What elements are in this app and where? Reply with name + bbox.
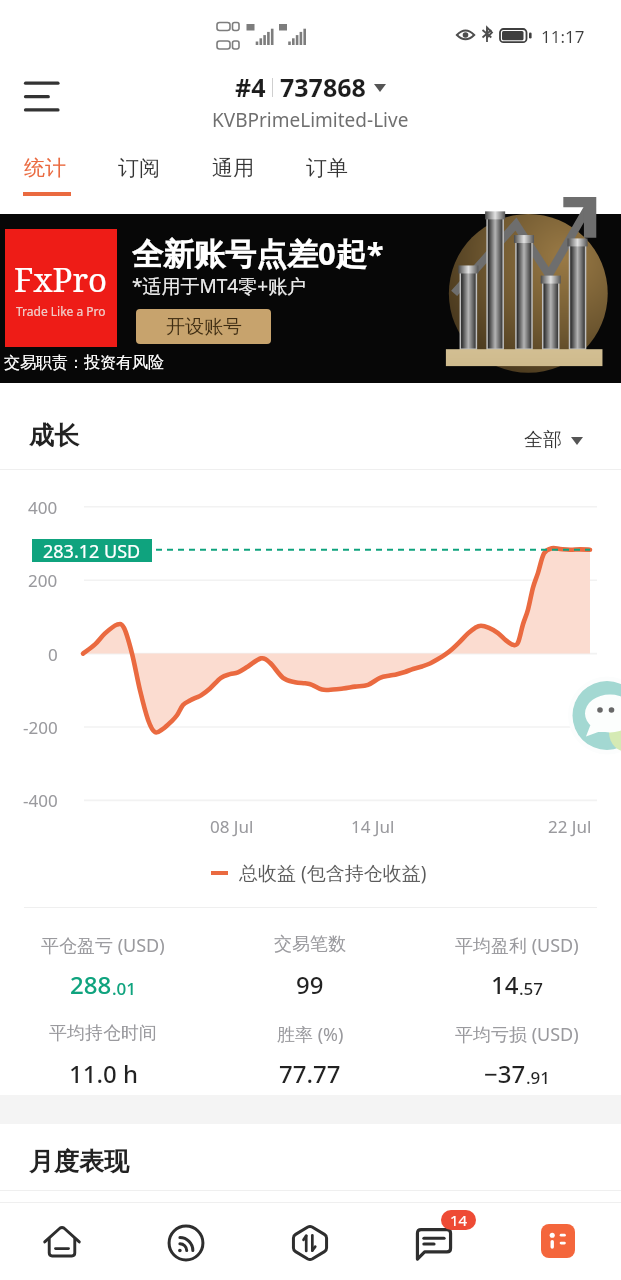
staticText: 平均盈利 (USD) xyxy=(455,933,579,958)
staticText: 全部 xyxy=(524,428,562,452)
staticText: 400 xyxy=(28,496,58,519)
staticText: FxPro xyxy=(14,257,108,302)
staticText: 交易职责：投资有风险 xyxy=(4,353,164,373)
staticText: −37 xyxy=(484,1057,526,1090)
staticText: 22 Jul xyxy=(548,815,592,838)
staticText: 288 xyxy=(70,968,112,1001)
staticText: -200 xyxy=(23,716,58,739)
button[interactable]: Trade xyxy=(270,1202,350,1280)
staticText: 总收益 (包含持仓收益) xyxy=(239,860,427,886)
staticText: 订阅 xyxy=(118,155,160,181)
button[interactable]: 通用 xyxy=(202,140,264,196)
staticText: 14 Jul xyxy=(351,815,395,838)
staticText: 0 xyxy=(48,643,58,666)
staticText: 平均亏损 (USD) xyxy=(455,1022,579,1047)
button[interactable]: 统计 xyxy=(14,140,76,196)
button[interactable]: 订单 xyxy=(296,140,358,196)
staticText: Trade Like a Pro xyxy=(16,303,106,319)
staticText: 平仓盈亏 (USD) xyxy=(41,933,165,958)
button[interactable]: 全部 xyxy=(524,428,583,452)
staticText: 283.12 USD xyxy=(43,539,141,562)
staticText: 全新账号点差0起* xyxy=(132,232,384,274)
staticText: 11:17 xyxy=(541,25,585,48)
staticText: 08 Jul xyxy=(210,815,254,838)
staticText: 交易笔数 xyxy=(274,933,346,956)
staticText: *适用于MT4零+账户 xyxy=(132,273,307,299)
staticText: -400 xyxy=(23,789,58,812)
staticText: .57 xyxy=(519,977,544,1000)
button[interactable]: Messages xyxy=(394,1202,474,1280)
staticText: 月度表现 xyxy=(29,1146,129,1177)
button[interactable]: 订阅 xyxy=(108,140,170,196)
staticText: 77.77 xyxy=(279,1057,341,1090)
staticText: 开设账号 xyxy=(166,315,242,339)
staticText: 737868 xyxy=(280,70,366,104)
staticText: 通用 xyxy=(212,155,254,181)
staticText: 平均持仓时间 xyxy=(49,1022,157,1045)
button[interactable]: Signals xyxy=(146,1202,226,1280)
button[interactable]: 开设账号 xyxy=(136,309,271,344)
button[interactable]: Profile xyxy=(518,1202,598,1280)
staticText: 成长 xyxy=(29,420,79,451)
button[interactable]: Menu xyxy=(15,73,69,121)
staticText: 14 xyxy=(491,968,519,1001)
staticText: 订单 xyxy=(306,155,348,181)
staticText: 11.0 h xyxy=(69,1057,138,1090)
staticText: .01 xyxy=(112,977,137,1000)
staticText: 99 xyxy=(296,968,324,1001)
staticText: KVBPrimeLimited-Live xyxy=(212,107,409,133)
button[interactable]: Customer support chat xyxy=(562,675,621,765)
button[interactable]: Home xyxy=(22,1202,102,1280)
staticText: .91 xyxy=(526,1066,551,1089)
button[interactable]: FxPro xyxy=(0,214,621,383)
staticText: 胜率 (%) xyxy=(277,1022,344,1047)
staticText: 14 xyxy=(450,1210,468,1230)
staticText: 200 xyxy=(28,569,58,592)
staticText: #4 xyxy=(235,70,266,104)
staticText: 统计 xyxy=(24,155,66,181)
